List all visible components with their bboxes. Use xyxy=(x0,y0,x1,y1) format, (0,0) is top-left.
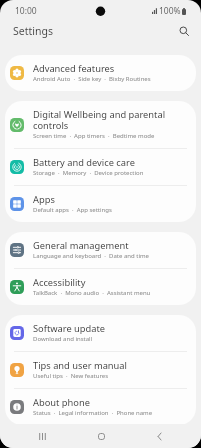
staticText: TalkBack · Mono audio · Assistant menu xyxy=(33,289,151,297)
staticText: Tips and user manual xyxy=(33,359,127,372)
staticText: General management xyxy=(33,239,129,252)
button[interactable]: Battery and device care xyxy=(5,149,196,185)
button[interactable]: Recents xyxy=(25,424,59,448)
staticText: Download and install xyxy=(33,335,93,343)
staticText: Battery and device care xyxy=(33,156,135,169)
staticText: Language and keyboard · Date and time xyxy=(33,252,149,260)
staticText: Software update xyxy=(33,322,106,335)
button[interactable]: Tips and user manual xyxy=(5,352,196,388)
button[interactable]: Advanced features xyxy=(5,55,196,91)
button[interactable]: Software update xyxy=(5,315,196,351)
staticText: 100% xyxy=(159,5,181,17)
button[interactable]: About phone xyxy=(5,389,196,425)
staticText: 10:00 xyxy=(15,5,37,17)
staticText: Screen time · App timers · Bedtime mode xyxy=(33,132,155,140)
staticText: Android Auto · Side key · Bixby Routines xyxy=(33,75,151,83)
button[interactable]: Accessibility xyxy=(5,269,196,305)
staticText: Storage · Memory · Device protection xyxy=(33,169,144,177)
button[interactable]: Back xyxy=(142,424,176,448)
staticText: Useful tips · New features xyxy=(33,372,109,380)
staticText: Status · Legal information · Phone name xyxy=(33,409,153,417)
button[interactable]: General management xyxy=(5,232,196,268)
staticText: About phone xyxy=(33,396,90,409)
staticText: Apps xyxy=(33,193,55,206)
button[interactable]: Home xyxy=(84,424,118,448)
staticText: Advanced features xyxy=(33,62,115,75)
button[interactable]: Search xyxy=(175,22,193,39)
staticText: Settings xyxy=(13,24,53,38)
button[interactable]: Digital Wellbeing and parental controls xyxy=(5,101,196,148)
button[interactable]: Apps xyxy=(5,186,196,222)
staticText: Accessibility xyxy=(33,276,86,289)
staticText: Default apps · App settings xyxy=(33,206,112,214)
staticText: Digital Wellbeing and parental controls xyxy=(33,108,166,132)
